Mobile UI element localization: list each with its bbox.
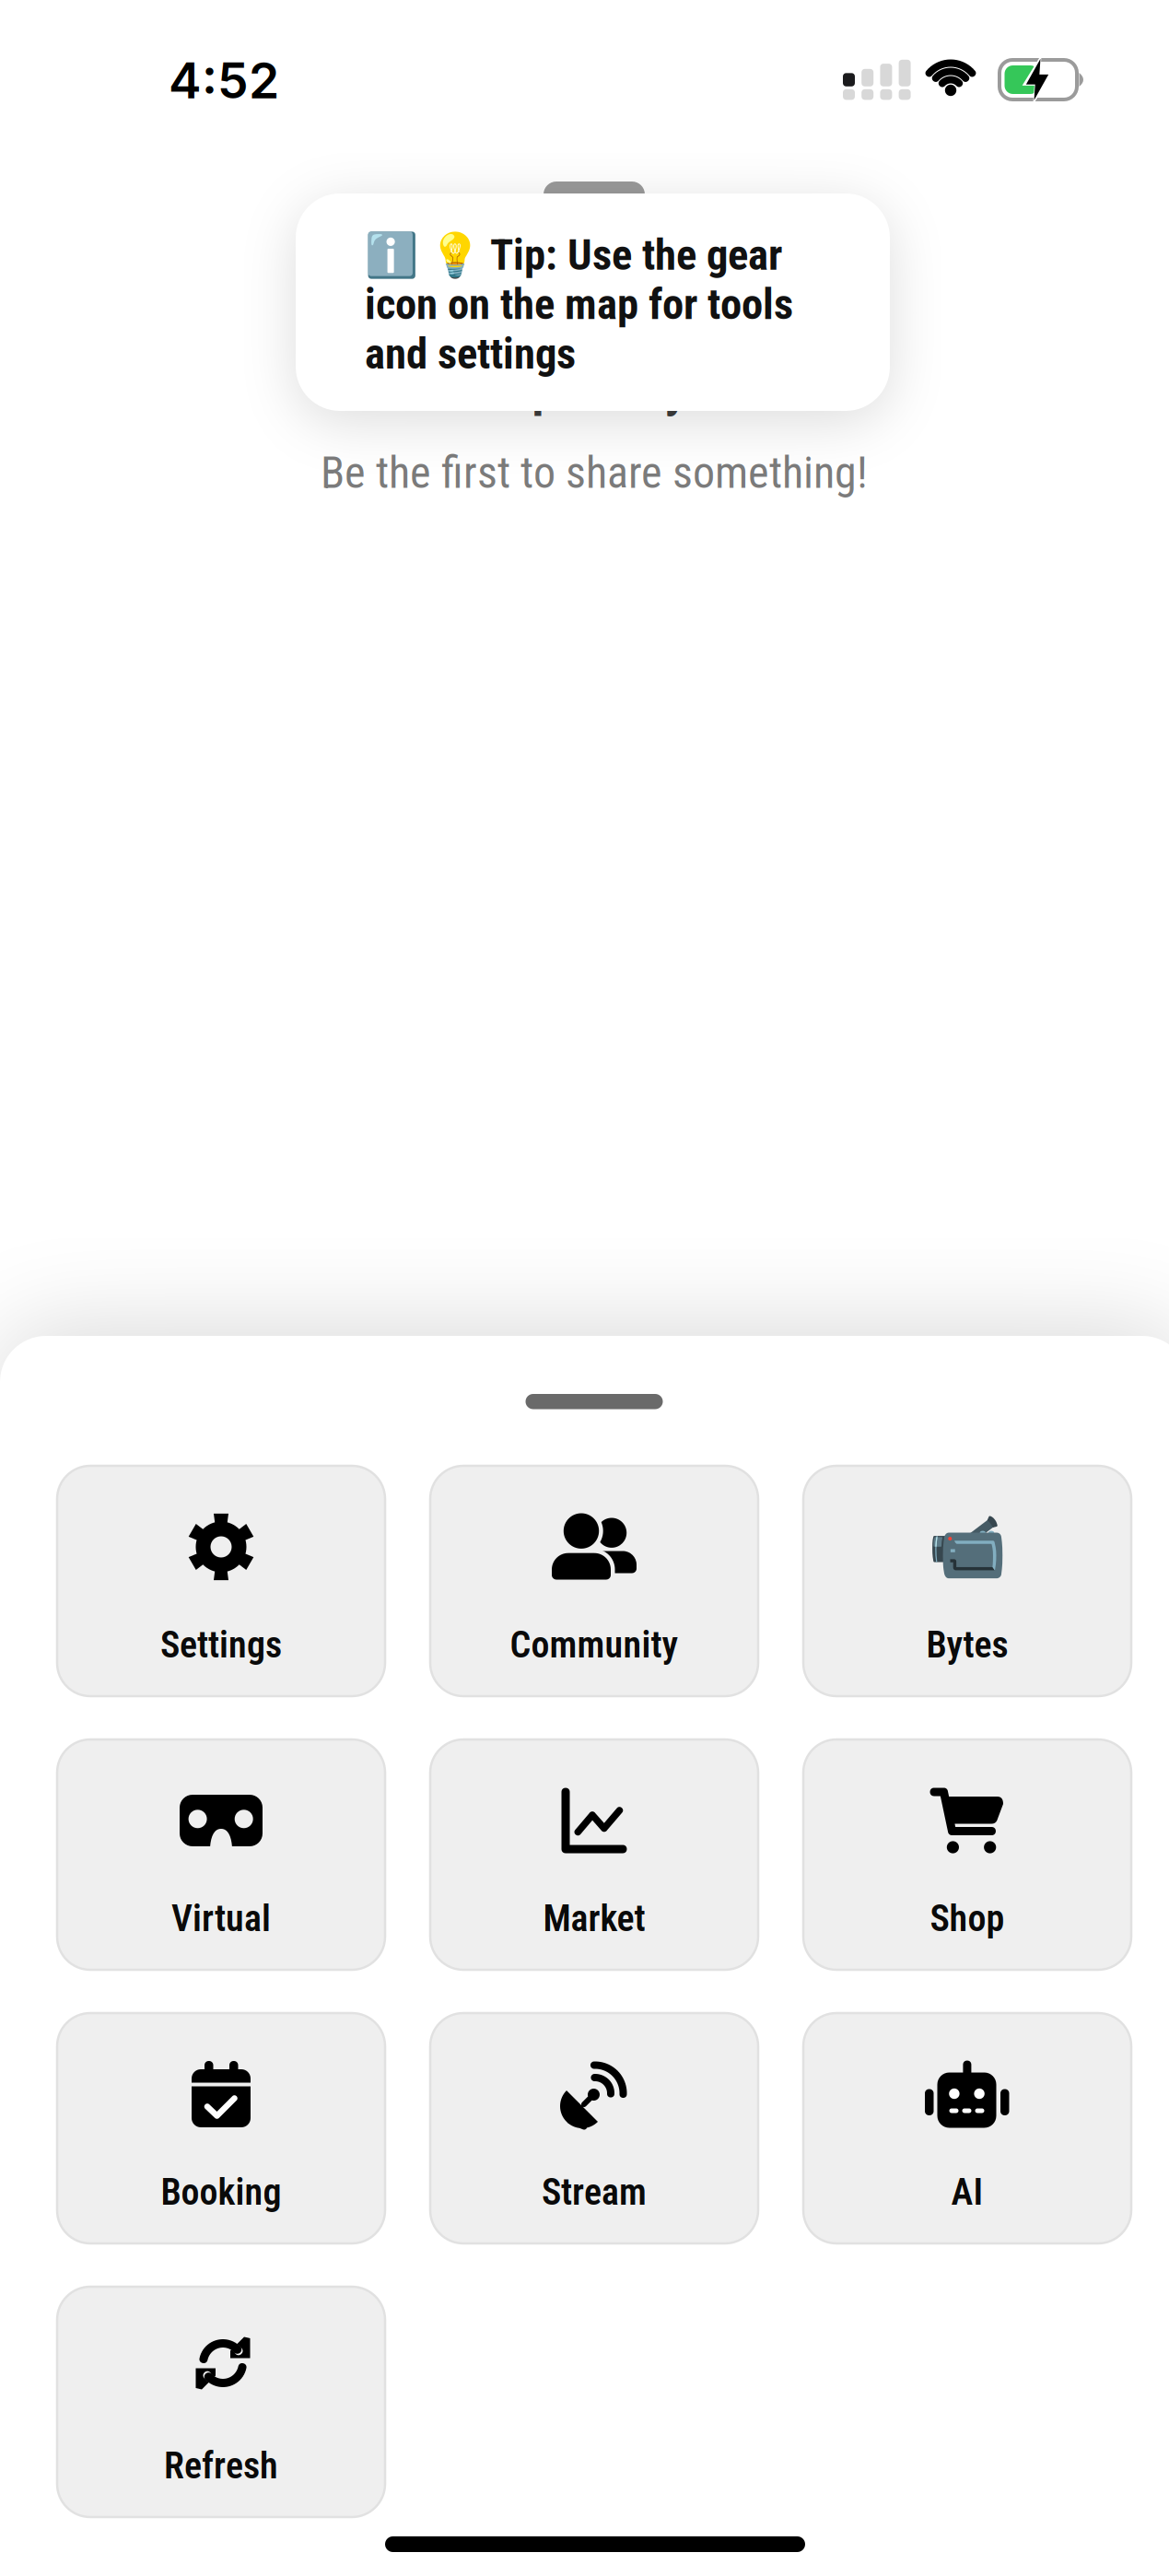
button[interactable]: Settings	[57, 1466, 385, 1696]
button[interactable]: Market	[430, 1739, 758, 1970]
button[interactable]: Refresh	[57, 2287, 385, 2517]
staticText: Stream	[542, 2171, 647, 2214]
staticText: Bytes	[926, 1623, 1008, 1667]
button[interactable]: Shop	[803, 1739, 1131, 1970]
staticText: AI	[951, 2171, 983, 2214]
staticText: Settings	[160, 1623, 282, 1667]
button[interactable]: Virtual	[57, 1739, 385, 1970]
button[interactable]: Stream	[430, 2013, 758, 2243]
button[interactable]: Drag indicator	[526, 1394, 663, 1409]
staticText: ℹ️ 💡 Tip: Use the gear icon on the map f…	[365, 230, 793, 378]
staticText: Shop	[930, 1897, 1005, 1940]
staticText: Refresh	[164, 2444, 278, 2487]
staticText: Booking	[161, 2171, 281, 2214]
button[interactable]: Community	[430, 1466, 758, 1696]
staticText: No posts yet	[459, 355, 730, 418]
staticText: Market	[543, 1897, 645, 1940]
staticText: Community	[510, 1623, 678, 1667]
button[interactable]: Booking	[57, 2013, 385, 2243]
button[interactable]: AI	[803, 2013, 1131, 2243]
staticText: Be the first to share something!	[321, 447, 868, 499]
staticText: 📹	[928, 1509, 1007, 1584]
staticText: Virtual	[171, 1897, 271, 1940]
button[interactable]: 📹	[803, 1466, 1131, 1696]
staticText: 4:52	[169, 51, 279, 110]
